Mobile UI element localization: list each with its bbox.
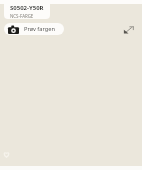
button[interactable]: Prøv fargen [4,23,64,35]
staticText: Prøv fargen [24,25,56,33]
button[interactable]: Favourite [2,150,11,159]
staticText: NCS-FARGE [10,13,34,19]
button[interactable]: S0502-Y50R [4,0,50,19]
button[interactable]: Expand colour [121,23,135,37]
staticText: S0502-Y50R [10,4,44,12]
